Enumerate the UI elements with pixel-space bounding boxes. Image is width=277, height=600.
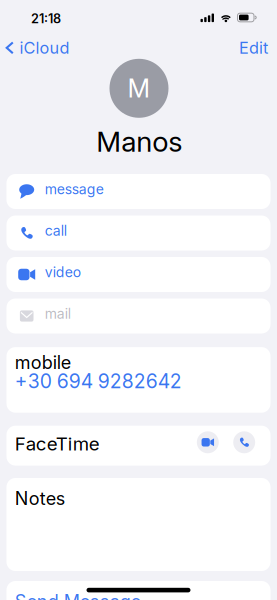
staticText: mobile xyxy=(15,352,71,373)
staticText: Notes xyxy=(15,487,66,509)
staticText: mail xyxy=(45,305,71,322)
staticText: Send Message xyxy=(15,590,141,600)
button[interactable]: FaceTime audio xyxy=(233,431,255,453)
staticText: +30 694 9282642 xyxy=(15,370,182,393)
button[interactable]: Send Message xyxy=(6,581,270,600)
button[interactable]: Edit xyxy=(233,34,274,62)
button[interactable]: iCloud xyxy=(1,35,74,61)
staticText: Manos xyxy=(96,124,182,158)
button[interactable]: mobile xyxy=(6,347,270,413)
staticText: video xyxy=(45,264,81,281)
staticText: 21:18 xyxy=(31,11,61,26)
staticText: FaceTime xyxy=(15,432,100,455)
button[interactable]: Notes xyxy=(6,478,270,571)
staticText: call xyxy=(45,222,67,239)
staticText: message xyxy=(45,181,104,198)
button[interactable]: video xyxy=(6,257,270,292)
staticText: Edit xyxy=(239,38,268,58)
staticText: M xyxy=(127,73,150,104)
staticText: iCloud xyxy=(20,38,70,58)
button[interactable]: FaceTime video xyxy=(197,431,219,453)
button[interactable]: call xyxy=(6,215,270,250)
button[interactable]: message xyxy=(6,174,270,209)
button[interactable]: mail xyxy=(6,298,270,333)
